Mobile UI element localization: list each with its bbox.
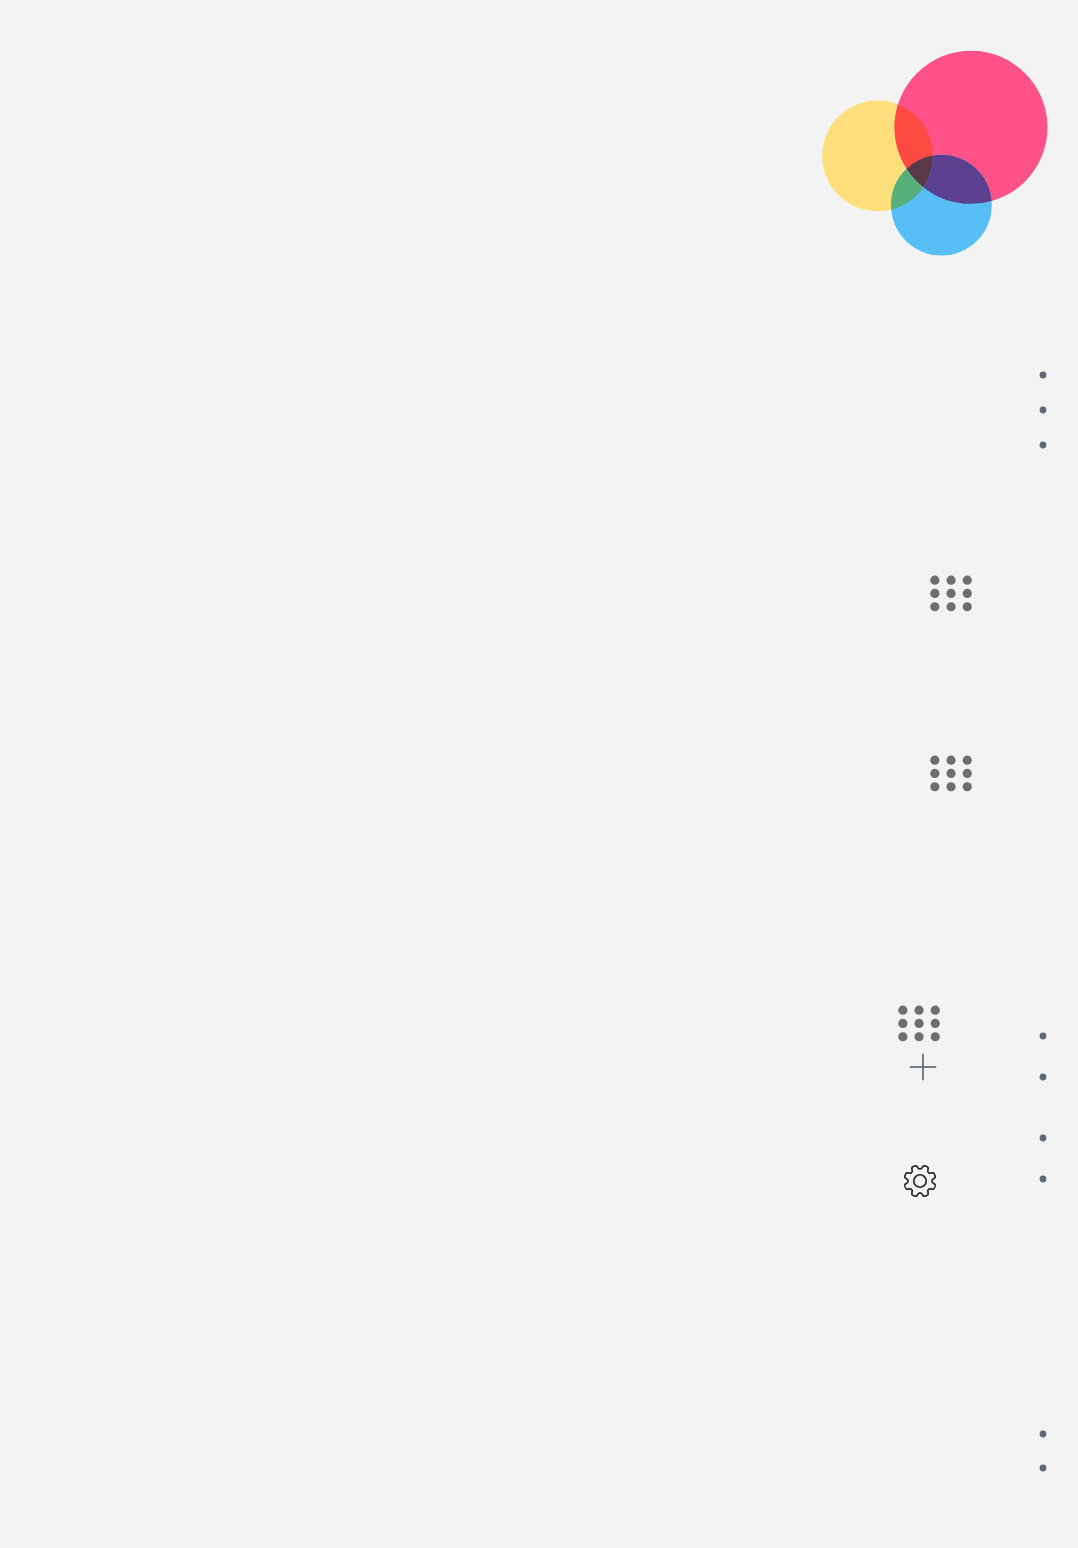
button[interactable]: All apps [926, 749, 974, 797]
button[interactable]: All apps [894, 999, 942, 1047]
button[interactable]: Add [899, 1043, 947, 1091]
button[interactable] [992, 1447, 1070, 1481]
button[interactable] [992, 1055, 1070, 1096]
button[interactable] [992, 1157, 1070, 1198]
button[interactable]: All apps [926, 569, 974, 617]
button[interactable] [992, 1014, 1070, 1055]
button[interactable] [992, 1413, 1070, 1447]
button[interactable] [992, 424, 1070, 459]
button[interactable] [992, 354, 1070, 389]
button[interactable] [992, 1116, 1070, 1157]
button[interactable] [992, 389, 1070, 424]
button[interactable]: App logo [822, 50, 1048, 256]
button[interactable]: Settings [896, 1157, 944, 1205]
